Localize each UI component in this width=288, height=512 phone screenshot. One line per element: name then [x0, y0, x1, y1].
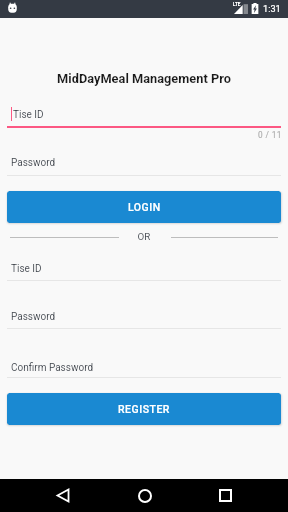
- button[interactable]: Password: [0, 305, 288, 332]
- staticText: Confirm Password: [11, 362, 94, 374]
- button[interactable]: Tise ID: [0, 103, 288, 130]
- button[interactable]: Tise ID: [0, 257, 288, 284]
- button[interactable]: Recent apps: [205, 481, 245, 510]
- staticText: LOGIN: [128, 201, 161, 213]
- button[interactable]: Home: [124, 481, 165, 510]
- button[interactable]: Back: [43, 481, 83, 510]
- staticText: OR: [0, 231, 288, 242]
- button[interactable]: Confirm Password: [0, 356, 288, 381]
- button[interactable]: Password: [0, 151, 288, 179]
- staticText: 0 / 11: [258, 130, 282, 140]
- button[interactable]: LOGIN: [7, 191, 281, 223]
- button[interactable]: REGISTER: [7, 393, 281, 425]
- staticText: Tise ID: [11, 263, 42, 275]
- staticText: 1:31: [263, 3, 281, 14]
- staticText: Password: [11, 311, 56, 323]
- staticText: Password: [11, 157, 56, 169]
- staticText: LTE: [233, 2, 241, 7]
- staticText: Tise ID: [13, 109, 44, 121]
- staticText: MidDayMeal Management Pro: [0, 71, 288, 86]
- staticText: REGISTER: [118, 403, 170, 415]
